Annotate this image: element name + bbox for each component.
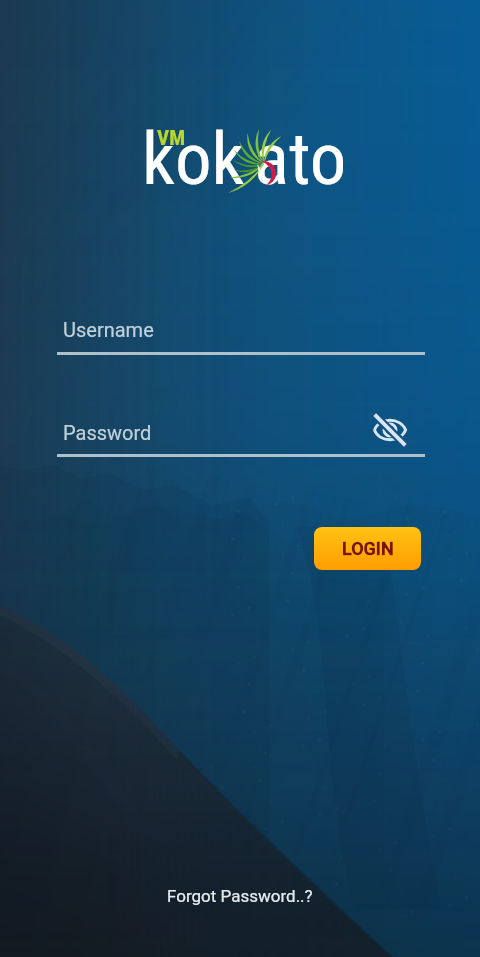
staticText: LOGIN	[342, 538, 394, 559]
staticText: VM	[157, 126, 186, 151]
staticText: kok	[142, 116, 245, 196]
button[interactable]: Show password	[367, 407, 413, 453]
staticText: Forgot Password..?	[167, 886, 313, 906]
button[interactable]: Forgot Password..?	[153, 880, 327, 912]
staticText: Username	[63, 318, 154, 341]
staticText: ato	[254, 116, 347, 196]
staticText: Password	[63, 421, 152, 444]
button[interactable]: LOGIN	[314, 527, 421, 570]
